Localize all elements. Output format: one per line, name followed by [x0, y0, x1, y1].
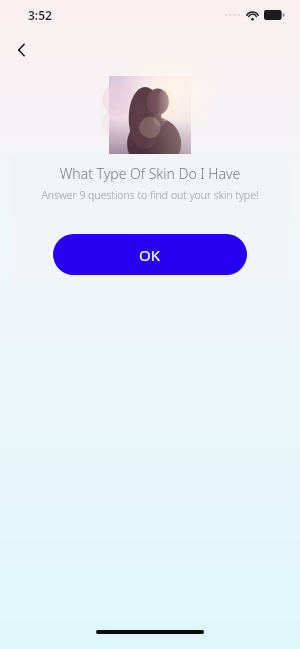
- button[interactable]: Back: [6, 34, 38, 66]
- staticText: 3:52: [28, 7, 52, 23]
- button[interactable]: OK: [53, 234, 247, 275]
- staticText: Answer 9 questions to find out your skin…: [11, 188, 289, 202]
- staticText: What Type Of Skin Do I Have: [11, 164, 289, 183]
- staticText: OK: [139, 245, 161, 265]
